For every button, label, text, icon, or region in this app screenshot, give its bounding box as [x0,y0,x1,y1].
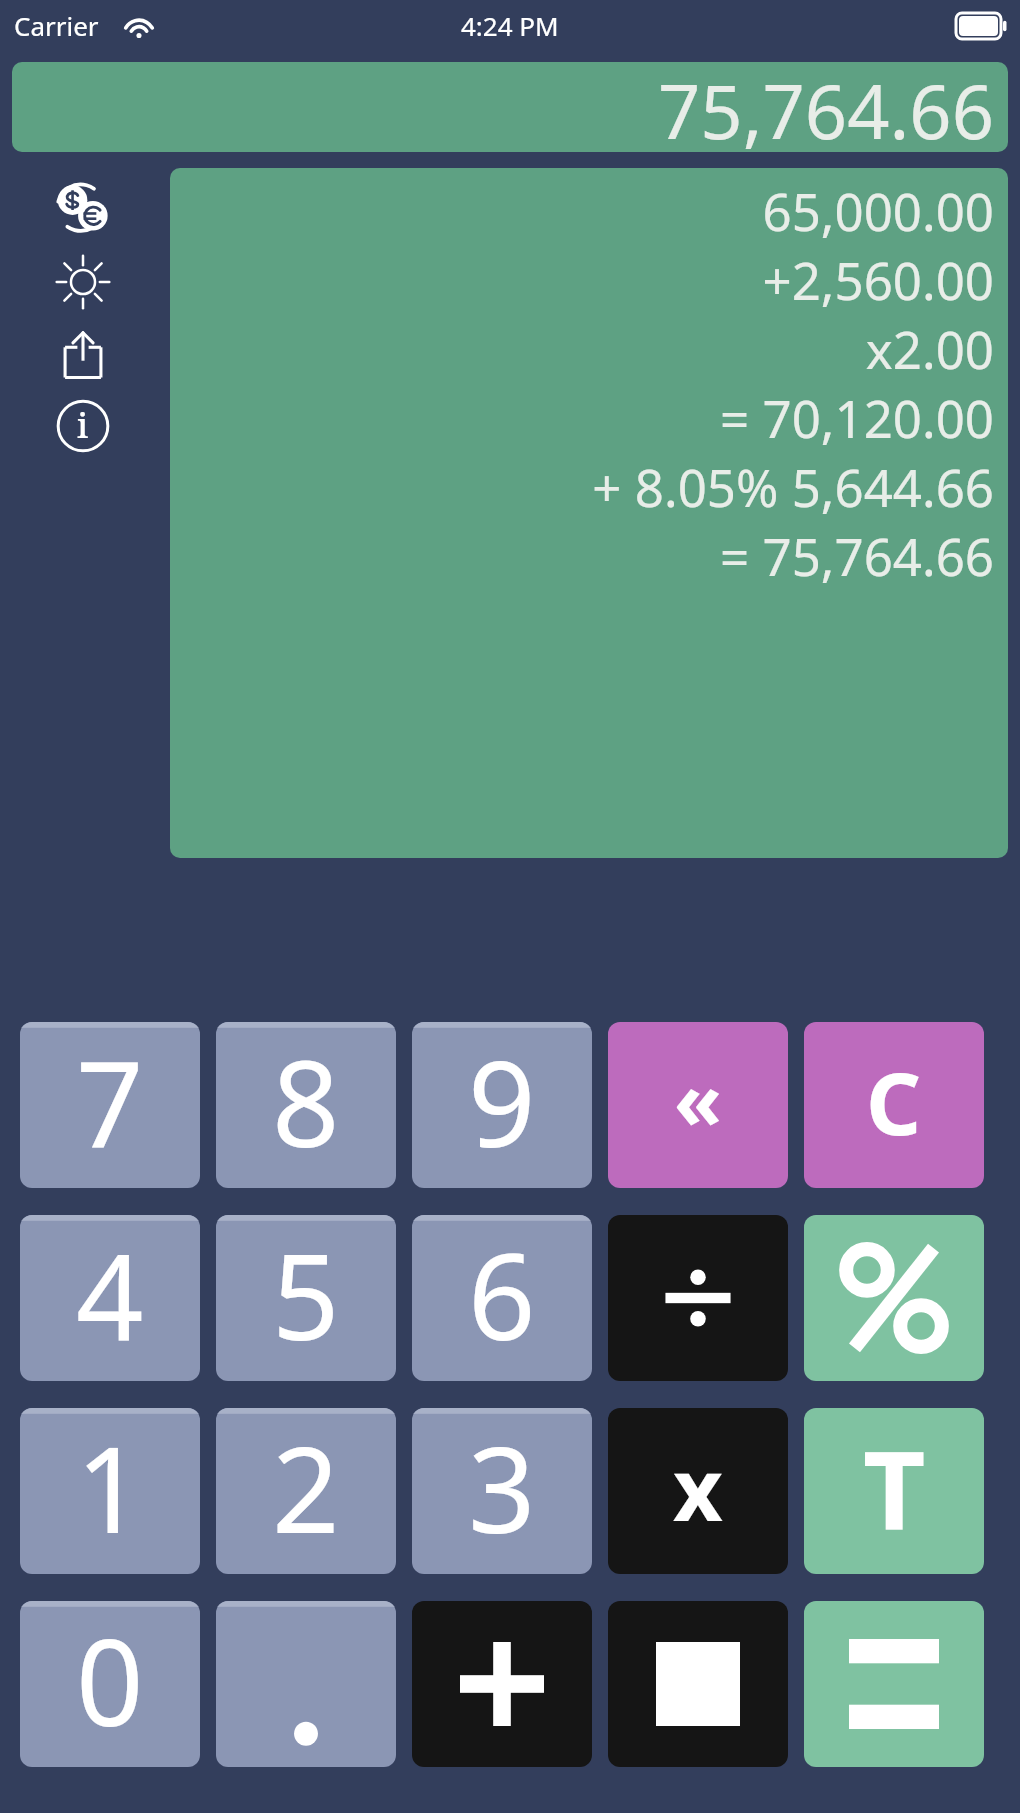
staticText: 8 [272,1022,340,1182]
staticText: 3 [468,1408,536,1568]
staticText: 7 [76,1022,144,1182]
staticText: 0 [76,1601,144,1761]
button[interactable]: Decimal point [216,1601,396,1767]
button[interactable]: Equals [804,1601,984,1767]
staticText: 5 [272,1215,340,1375]
staticText: 75,764.66 [658,62,994,150]
button[interactable]: Divide [608,1215,788,1381]
staticText: C [866,1043,922,1160]
button[interactable]: Plus [412,1601,592,1767]
button[interactable]: C [804,1022,984,1188]
button[interactable]: 1 [20,1408,200,1574]
staticText: T [863,1414,926,1561]
staticText: 4 [76,1215,144,1375]
button[interactable]: Share [48,319,118,389]
button[interactable]: 8 [216,1022,396,1188]
staticText: = 70,120.00 [720,383,994,452]
button[interactable]: Brightness [48,247,118,317]
button[interactable]: Percent [804,1215,984,1381]
button[interactable]: 5 [216,1215,396,1381]
button[interactable]: 75,764.66 [12,62,1008,152]
button[interactable]: Currency conversion [48,175,118,245]
button[interactable]: 6 [412,1215,592,1381]
button[interactable]: 65,000.00 [170,168,1008,858]
staticText: +2,560.00 [762,245,994,314]
button[interactable]: 4 [20,1215,200,1381]
staticText: 6 [468,1215,536,1375]
button[interactable]: x [608,1408,788,1574]
button[interactable]: 2 [216,1408,396,1574]
staticText: = 75,764.66 [720,521,994,590]
staticText: i [77,402,89,448]
button[interactable]: Info [48,391,118,461]
button[interactable]: T [804,1408,984,1574]
staticText: Carrier [14,8,99,43]
staticText: + 8.05% 5,644.66 [592,452,994,521]
button[interactable]: Backspace [608,1022,788,1188]
staticText: 4:24 PM [461,8,559,43]
staticText: x [673,1429,723,1546]
staticText: 1 [76,1408,144,1568]
button[interactable]: 9 [412,1022,592,1188]
staticText: 2 [272,1408,340,1568]
button[interactable]: 3 [412,1408,592,1574]
button[interactable]: Minus [608,1601,788,1767]
staticText: 65,000.00 [762,176,994,245]
staticText: « [674,1046,722,1152]
staticText: 9 [468,1022,536,1182]
button[interactable]: 7 [20,1022,200,1188]
staticText: x2.00 [865,314,994,383]
button[interactable]: 0 [20,1601,200,1767]
